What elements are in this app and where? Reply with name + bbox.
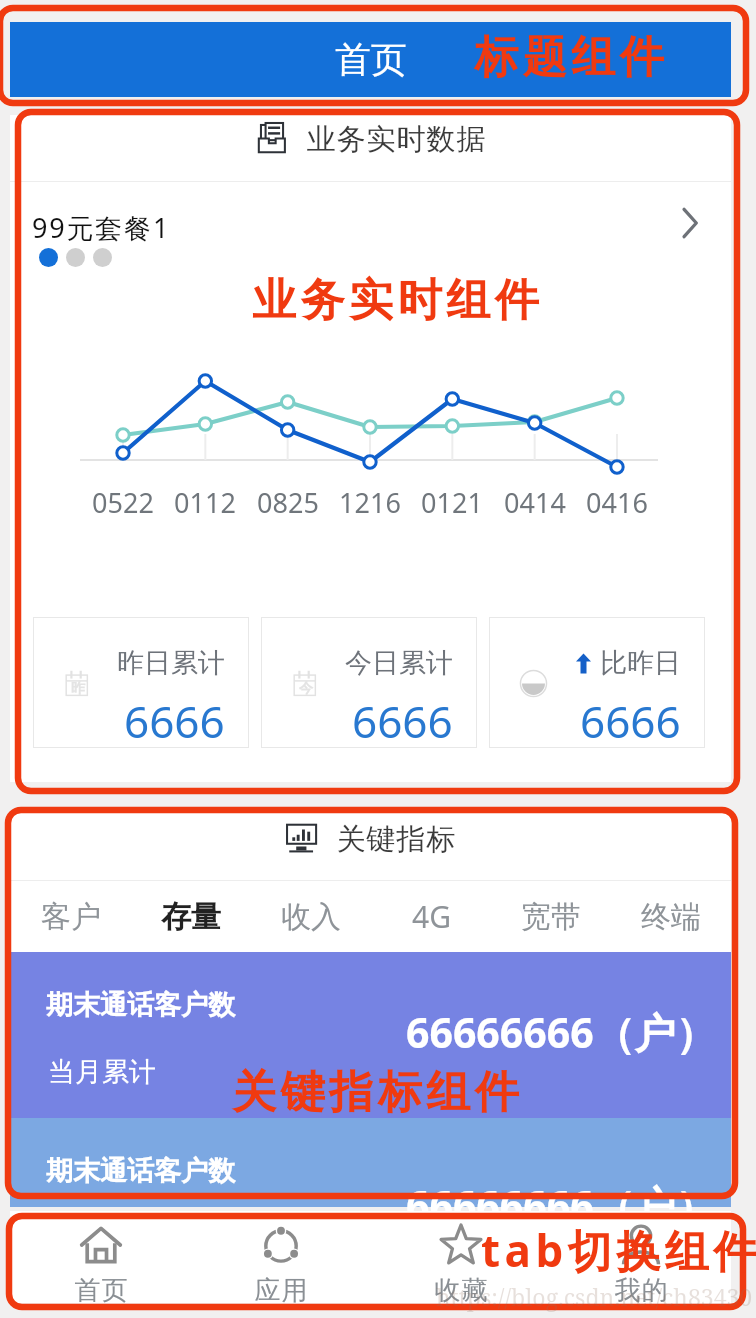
staticText: 收入 <box>281 898 341 936</box>
staticText: 期末通话客户数 <box>46 988 235 1022</box>
staticText: 业务实时数据 <box>306 121 486 158</box>
staticText: 终端 <box>641 898 701 936</box>
staticText: 客户 <box>41 898 101 936</box>
button[interactable]: 4G <box>371 881 491 952</box>
staticText: 1216 <box>335 484 405 521</box>
staticText: 昨 <box>71 680 85 698</box>
staticText: 首页 <box>74 1274 128 1303</box>
staticText: 首页 <box>335 37 407 82</box>
button[interactable]: 应用 <box>191 1211 371 1303</box>
staticText: 今 <box>299 680 313 698</box>
staticText: 业务实时组件 <box>250 273 541 328</box>
staticText: 6666 <box>124 691 225 748</box>
button[interactable]: 存量 <box>131 881 251 952</box>
staticText: https://blog.csdn.net/ch83430 <box>436 1281 753 1312</box>
button[interactable]: 我的 <box>551 1211 731 1303</box>
staticText: 标题组件 <box>472 30 666 85</box>
button[interactable]: 客户 <box>10 881 131 952</box>
staticText: 0414 <box>500 484 570 521</box>
button[interactable]: More <box>674 205 710 241</box>
staticText: 6666 <box>352 691 453 748</box>
button[interactable]: 期末通话客户数 <box>10 1118 731 1207</box>
staticText: 66666666（户） <box>406 1004 717 1060</box>
button[interactable]: 首页 <box>10 1211 191 1303</box>
button[interactable]: 今 <box>261 617 477 748</box>
button[interactable]: 收藏 <box>371 1211 551 1303</box>
staticText: 6666 <box>580 691 681 748</box>
button[interactable]: 终端 <box>611 881 731 952</box>
staticText: 关键指标组件 <box>230 1065 521 1120</box>
staticText: 昨日累计 <box>117 646 225 680</box>
staticText: 当月累计 <box>48 1055 156 1089</box>
staticText: 99元套餐1 <box>32 209 171 246</box>
button[interactable]: 昨 <box>33 617 249 748</box>
button[interactable]: 宽带 <box>491 881 611 952</box>
staticText: 今日累计 <box>345 646 453 680</box>
staticText: 0121 <box>417 484 487 521</box>
staticText: 0416 <box>582 484 652 521</box>
staticText: 0112 <box>170 484 240 521</box>
staticText: 关键指标 <box>336 821 456 858</box>
staticText: 应用 <box>254 1274 308 1303</box>
staticText: 4G <box>412 896 451 937</box>
staticText: 存量 <box>161 898 221 936</box>
staticText: 比昨日 <box>600 646 681 680</box>
staticText: 我的 <box>614 1274 668 1303</box>
staticText: 收藏 <box>434 1274 488 1303</box>
staticText: tab切换组件 <box>481 1220 756 1280</box>
staticText: 0825 <box>253 484 323 521</box>
button[interactable]: 收入 <box>251 881 371 952</box>
staticText: 0522 <box>88 484 158 521</box>
button[interactable]: 期末通话客户数 <box>10 952 731 1118</box>
staticText: 期末通话客户数 <box>46 1154 235 1188</box>
staticText: 宽带 <box>521 898 581 936</box>
staticText: 66666666（户） <box>406 1177 717 1233</box>
button[interactable]: 比昨日 <box>489 617 705 748</box>
button[interactable]: 首页 <box>10 22 731 97</box>
